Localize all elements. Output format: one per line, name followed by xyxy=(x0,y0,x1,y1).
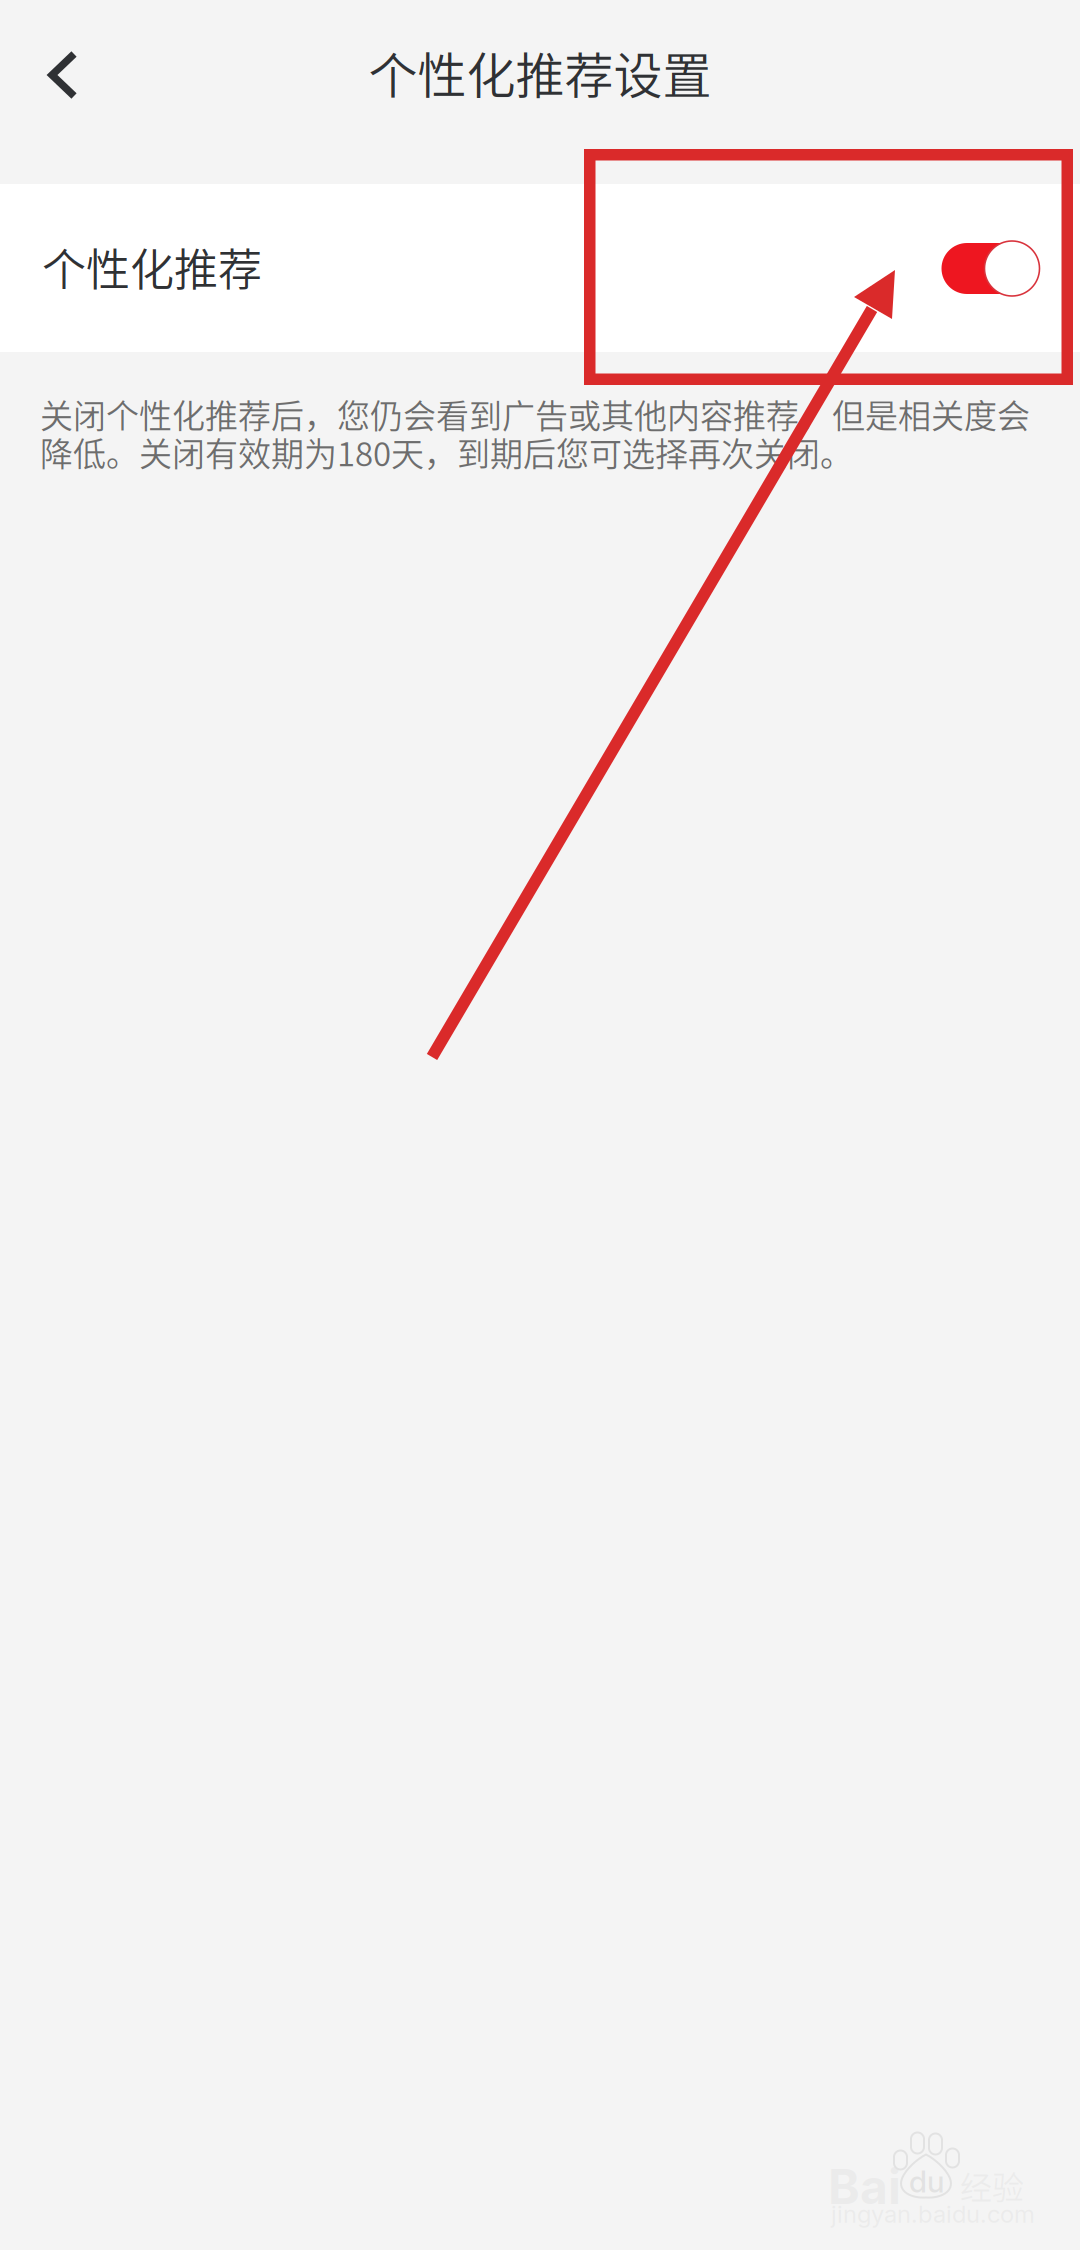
staticText: jingyan.baidu.com xyxy=(831,2199,1035,2228)
staticText: du xyxy=(909,2163,944,2200)
button[interactable]: 个性化推荐开关，已开启 xyxy=(932,231,1048,306)
staticText: 经验 xyxy=(960,2162,1024,2209)
staticText: 个性化推荐设置 xyxy=(368,37,711,108)
staticText: 关闭个性化推荐后，您仍会看到广告或其他内容推荐，但是相关度会 xyxy=(40,390,1030,438)
button[interactable]: 个性化推荐 xyxy=(0,184,1080,352)
button[interactable]: 返回 xyxy=(0,17,118,167)
staticText: 个性化推荐 xyxy=(42,235,262,299)
staticText: 降低。关闭有效期为180天，到期后您可选择再次关闭。 xyxy=(40,428,853,476)
staticText: Bai xyxy=(828,2157,901,2216)
